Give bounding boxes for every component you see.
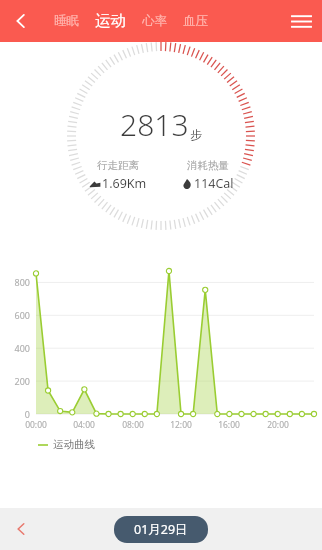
staticText: 08:00 bbox=[116, 419, 150, 431]
staticText: 01月29日 bbox=[134, 521, 188, 538]
staticText: 20:00 bbox=[261, 419, 295, 431]
staticText: 行走距离 bbox=[97, 159, 139, 172]
staticText: 2813 bbox=[120, 104, 189, 145]
staticText: 1.69Km bbox=[102, 175, 147, 192]
staticText: 0 bbox=[0, 408, 30, 420]
button[interactable]: 血压 bbox=[181, 9, 210, 33]
staticText: 800 bbox=[0, 276, 30, 288]
button[interactable]: Menu bbox=[280, 0, 322, 42]
button[interactable]: 心率 bbox=[140, 9, 169, 33]
staticText: 步 bbox=[190, 127, 202, 142]
button[interactable]: Back bbox=[0, 0, 42, 42]
button[interactable]: 01月29日 bbox=[114, 516, 208, 543]
staticText: 睡眠 bbox=[54, 13, 79, 29]
button[interactable]: 运动 bbox=[93, 7, 128, 35]
staticText: 12:00 bbox=[164, 419, 198, 431]
staticText: 04:00 bbox=[67, 419, 101, 431]
staticText: 200 bbox=[0, 375, 30, 387]
button[interactable]: 睡眠 bbox=[52, 9, 81, 33]
staticText: 600 bbox=[0, 309, 30, 321]
staticText: 运动曲线 bbox=[53, 438, 95, 451]
staticText: 400 bbox=[0, 342, 30, 354]
button[interactable]: Previous day bbox=[0, 508, 42, 550]
staticText: 00:00 bbox=[19, 419, 53, 431]
staticText: 16:00 bbox=[212, 419, 246, 431]
staticText: 消耗热量 bbox=[187, 159, 229, 172]
staticText: 血压 bbox=[183, 13, 208, 29]
staticText: 运动 bbox=[95, 11, 126, 31]
staticText: 114Cal bbox=[194, 175, 234, 192]
staticText: 心率 bbox=[142, 13, 167, 29]
